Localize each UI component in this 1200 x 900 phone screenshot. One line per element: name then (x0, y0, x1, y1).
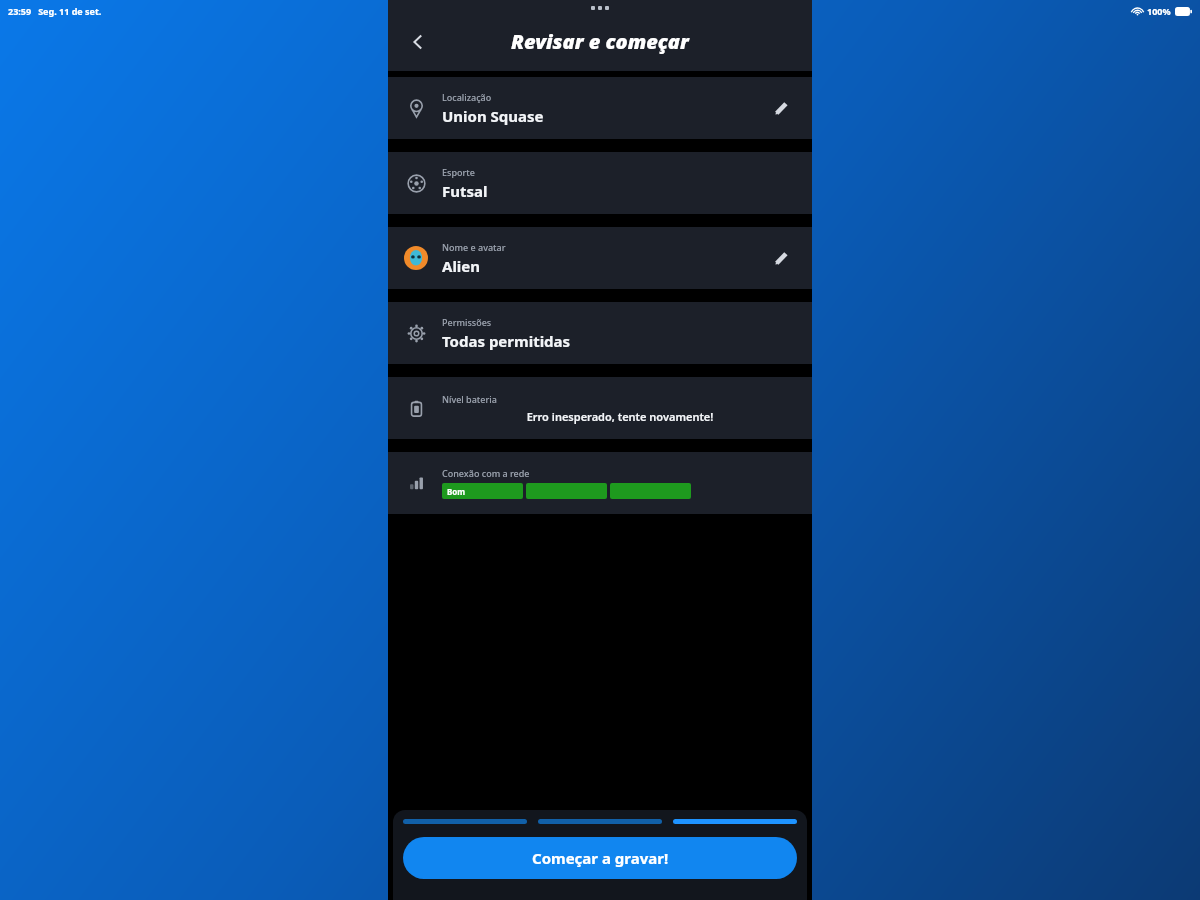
staticText: 23:59 Seg. 11 de set. (8, 5, 102, 17)
staticText: Futsal (442, 181, 488, 201)
staticText: Começar a gravar! (532, 848, 669, 868)
button[interactable]: Esporte (388, 152, 812, 214)
button[interactable]: Voltar (400, 24, 436, 60)
staticText: Bom (447, 486, 466, 497)
button[interactable]: Localização (388, 77, 812, 139)
button[interactable]: Permissões (388, 302, 812, 364)
staticText: Permissões (442, 316, 492, 328)
button[interactable]: Conexão com a rede (388, 452, 812, 514)
staticText: Conexão com a rede (442, 467, 530, 479)
button[interactable]: Editar Nome e avatar (764, 241, 798, 275)
staticText: Nome e avatar (442, 241, 506, 253)
staticText: Todas permitidas (442, 331, 571, 351)
button[interactable]: Editar Localização (764, 91, 798, 125)
staticText: Union Squase (442, 106, 544, 126)
button[interactable]: Começar a gravar! (403, 837, 797, 879)
button[interactable]: Nível bateria (388, 377, 812, 439)
staticText: Revisar e começar (511, 28, 689, 55)
staticText: Erro inesperado, tente novamente! (442, 409, 798, 424)
staticText: 100% (1147, 5, 1171, 17)
staticText: Alien (442, 256, 481, 276)
button[interactable]: Nome e avatar (388, 227, 812, 289)
staticText: Localização (442, 91, 492, 103)
staticText: Esporte (442, 166, 475, 178)
staticText: Nível bateria (442, 393, 497, 405)
